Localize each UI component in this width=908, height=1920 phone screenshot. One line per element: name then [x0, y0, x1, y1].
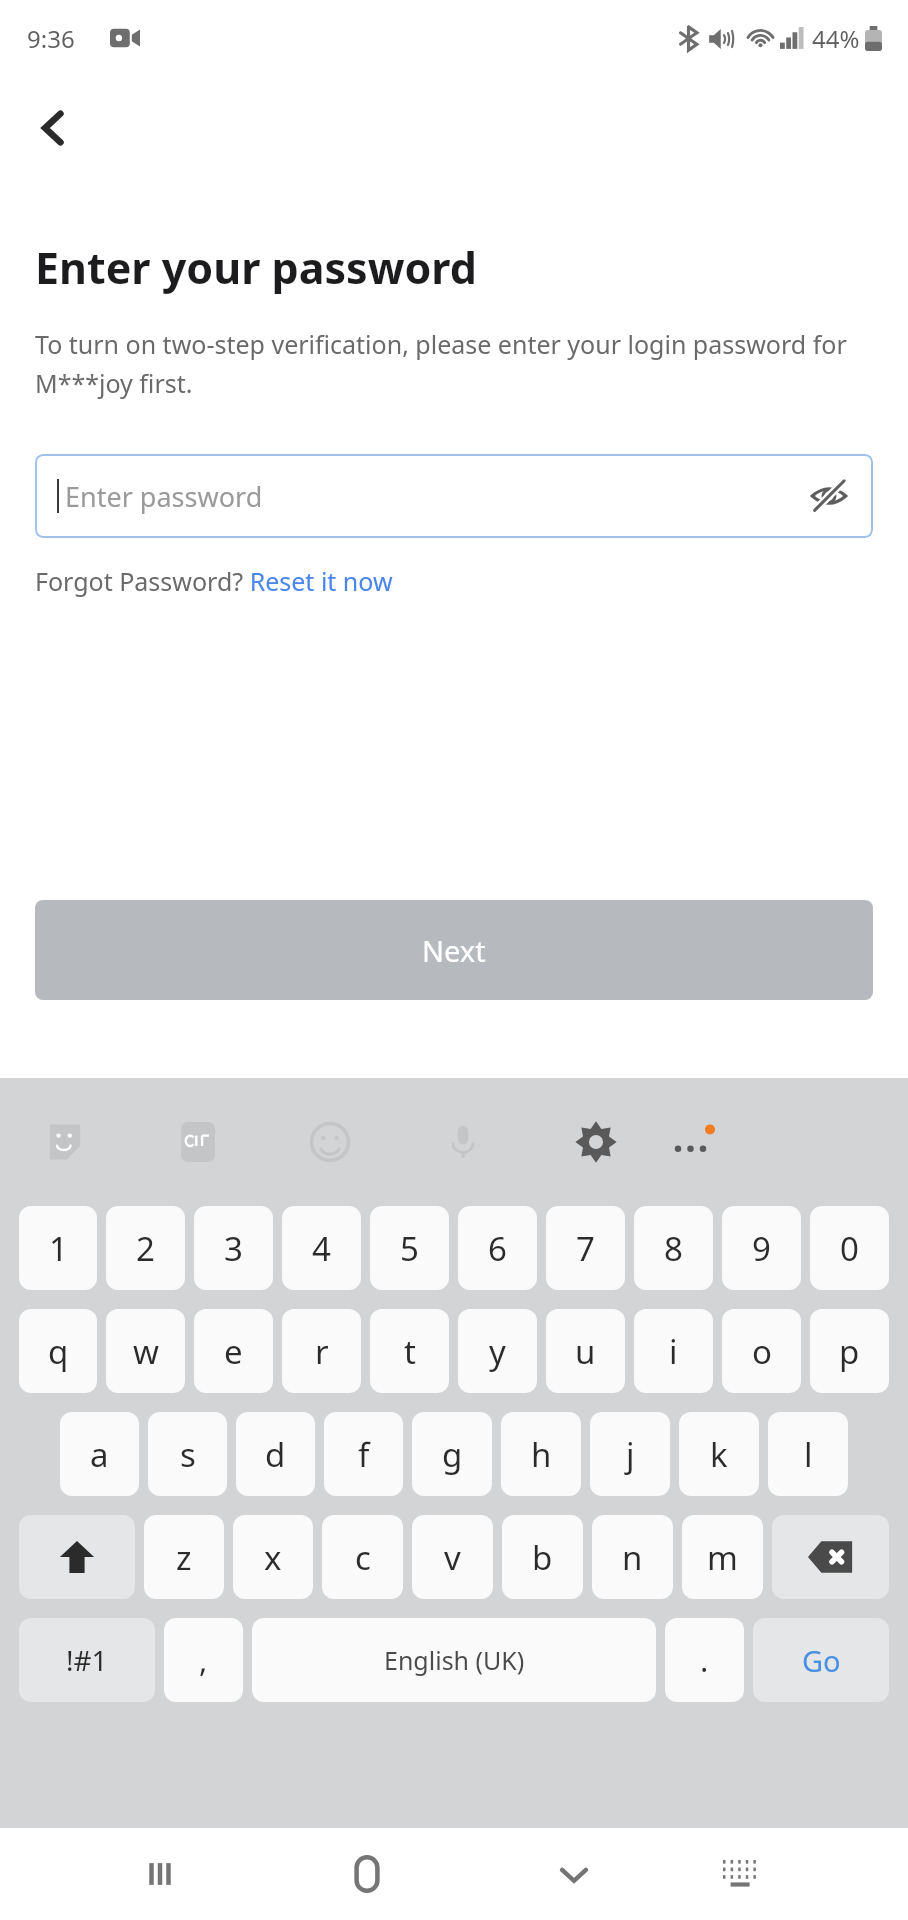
button[interactable]: !#1 — [19, 1618, 155, 1702]
button[interactable]: c — [322, 1515, 403, 1599]
button[interactable]: d — [236, 1412, 315, 1496]
staticText: To turn on two-step verification, please… — [35, 327, 873, 400]
button[interactable]: 4 — [282, 1206, 361, 1290]
staticText: 1 — [49, 1226, 68, 1271]
button[interactable]: g — [412, 1412, 492, 1496]
button[interactable]: e — [194, 1309, 273, 1393]
button[interactable]: Backspace — [772, 1515, 889, 1599]
button[interactable]: 1 — [19, 1206, 97, 1290]
staticText: Go — [802, 1641, 841, 1680]
staticText: 6 — [488, 1226, 507, 1271]
button[interactable]: z — [144, 1515, 224, 1599]
button[interactable]: m — [682, 1515, 763, 1599]
button[interactable]: l — [768, 1412, 848, 1496]
button[interactable]: 3 — [194, 1206, 273, 1290]
button[interactable]: q — [19, 1309, 97, 1393]
staticText: b — [532, 1535, 553, 1580]
button[interactable]: 6 — [458, 1206, 537, 1290]
button[interactable]: . — [665, 1618, 744, 1702]
staticText: 2 — [136, 1226, 155, 1271]
button[interactable]: r — [282, 1309, 361, 1393]
button[interactable]: 7 — [546, 1206, 625, 1290]
button[interactable]: y — [458, 1309, 537, 1393]
staticText: Enter password — [65, 478, 801, 515]
staticText: f — [358, 1432, 370, 1477]
button[interactable]: x — [233, 1515, 313, 1599]
staticText: h — [531, 1432, 552, 1477]
staticText: q — [48, 1329, 69, 1374]
button[interactable]: 0 — [810, 1206, 889, 1290]
button[interactable]: Forgot Password? Reset it now — [35, 564, 393, 598]
staticText: d — [265, 1432, 286, 1477]
button[interactable]: f — [324, 1412, 403, 1496]
button[interactable]: Go — [753, 1618, 889, 1702]
button[interactable]: b — [502, 1515, 583, 1599]
staticText: 9 — [752, 1226, 771, 1271]
button[interactable]: 2 — [106, 1206, 185, 1290]
staticText: English (UK) — [384, 1643, 525, 1677]
button[interactable]: Show password — [801, 468, 857, 524]
button[interactable]: Next — [35, 900, 873, 1000]
button[interactable]: Recents — [122, 1836, 198, 1912]
staticText: 44% — [812, 22, 860, 55]
staticText: y — [489, 1329, 506, 1374]
staticText: o — [752, 1329, 772, 1374]
staticText: v — [444, 1535, 461, 1580]
button[interactable]: n — [592, 1515, 673, 1599]
button[interactable]: s — [148, 1412, 227, 1496]
button[interactable]: 9 — [722, 1206, 801, 1290]
staticText: 8 — [664, 1226, 683, 1271]
button[interactable]: o — [722, 1309, 801, 1393]
button[interactable]: Voice input — [429, 1108, 497, 1176]
staticText: j — [626, 1432, 635, 1477]
button[interactable]: 8 — [634, 1206, 713, 1290]
staticText: 0 — [840, 1226, 859, 1271]
staticText: z — [176, 1535, 192, 1580]
staticText: Next — [422, 931, 486, 970]
staticText: n — [622, 1535, 643, 1580]
button[interactable]: Home — [329, 1836, 405, 1912]
button[interactable]: i — [634, 1309, 713, 1393]
button[interactable]: , — [164, 1618, 243, 1702]
staticText: p — [839, 1329, 860, 1374]
staticText: s — [180, 1432, 196, 1477]
staticText: 7 — [576, 1226, 595, 1271]
button[interactable]: k — [679, 1412, 759, 1496]
staticText: Forgot Password? Reset it now — [35, 564, 393, 598]
button[interactable]: Stickers — [31, 1108, 99, 1176]
staticText: 4 — [312, 1226, 331, 1271]
button[interactable]: English (UK) — [252, 1618, 656, 1702]
staticText: i — [669, 1329, 678, 1374]
staticText: u — [575, 1329, 596, 1374]
button[interactable]: Emoji — [296, 1108, 364, 1176]
staticText: g — [442, 1432, 463, 1477]
staticText: a — [90, 1432, 109, 1477]
staticText: !#1 — [66, 1641, 108, 1679]
button[interactable]: a — [60, 1412, 139, 1496]
button[interactable]: Settings — [562, 1108, 630, 1176]
button[interactable]: u — [546, 1309, 625, 1393]
button[interactable]: Back — [16, 90, 92, 166]
staticText: k — [710, 1432, 728, 1477]
button[interactable]: w — [106, 1309, 185, 1393]
button[interactable]: More — [658, 1108, 726, 1176]
button[interactable]: v — [412, 1515, 493, 1599]
button[interactable]: Enter password — [35, 454, 873, 538]
button[interactable]: Hide keyboard — [536, 1836, 612, 1912]
button[interactable]: p — [810, 1309, 889, 1393]
staticText: r — [315, 1329, 329, 1374]
staticText: 3 — [224, 1226, 243, 1271]
staticText: e — [224, 1329, 243, 1374]
button[interactable]: Keyboard — [704, 1836, 780, 1912]
staticText: l — [804, 1432, 813, 1477]
button[interactable]: Shift — [19, 1515, 135, 1599]
staticText: , — [199, 1639, 208, 1681]
button[interactable]: t — [370, 1309, 449, 1393]
staticText: w — [133, 1329, 159, 1374]
button[interactable]: 5 — [370, 1206, 449, 1290]
button[interactable]: h — [501, 1412, 581, 1496]
staticText: . — [700, 1639, 709, 1681]
button[interactable]: j — [590, 1412, 670, 1496]
staticText: x — [264, 1535, 282, 1580]
button[interactable]: GIF — [164, 1108, 232, 1176]
